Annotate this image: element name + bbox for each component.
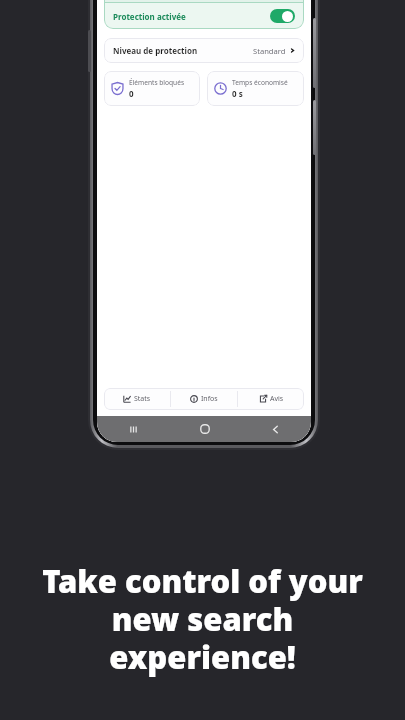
staticText: Take control of your new search experien… (26, 560, 379, 678)
button[interactable]: Protection activée (104, 3, 304, 29)
staticText: Protection activée (113, 11, 186, 22)
staticText: Infos (201, 394, 218, 404)
button[interactable]: Niveau de protection (104, 38, 304, 63)
staticText: Stats (134, 394, 151, 404)
staticText: Niveau de protection (113, 45, 198, 56)
staticText: Avis (270, 394, 284, 404)
button[interactable]: Éléments bloqués (104, 71, 200, 106)
staticText: Standard (253, 46, 286, 56)
button[interactable]: Recent apps (97, 416, 169, 442)
button[interactable]: Back (240, 416, 311, 442)
button[interactable]: Stats (104, 388, 170, 410)
button[interactable]: Infos (171, 388, 237, 410)
button[interactable]: Avis (238, 388, 304, 410)
button[interactable]: Home (169, 416, 240, 442)
button[interactable]: Temps économisé (207, 71, 304, 106)
staticText: 0 s (232, 88, 243, 99)
staticText: Éléments bloqués (129, 78, 185, 87)
staticText: 0 (129, 88, 134, 99)
staticText: Temps économisé (232, 78, 288, 87)
